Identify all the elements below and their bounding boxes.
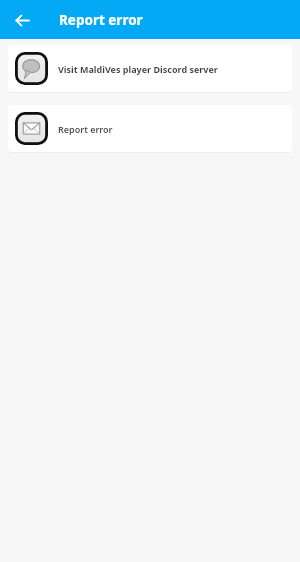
button[interactable]: Visit MaldiVes player Discord server — [8, 45, 292, 92]
button[interactable]: Back — [8, 6, 36, 34]
staticText: Report error — [59, 11, 143, 29]
staticText: Report error — [58, 123, 113, 135]
staticText: Visit MaldiVes player Discord server — [58, 63, 218, 75]
button[interactable]: Report error — [8, 105, 292, 152]
